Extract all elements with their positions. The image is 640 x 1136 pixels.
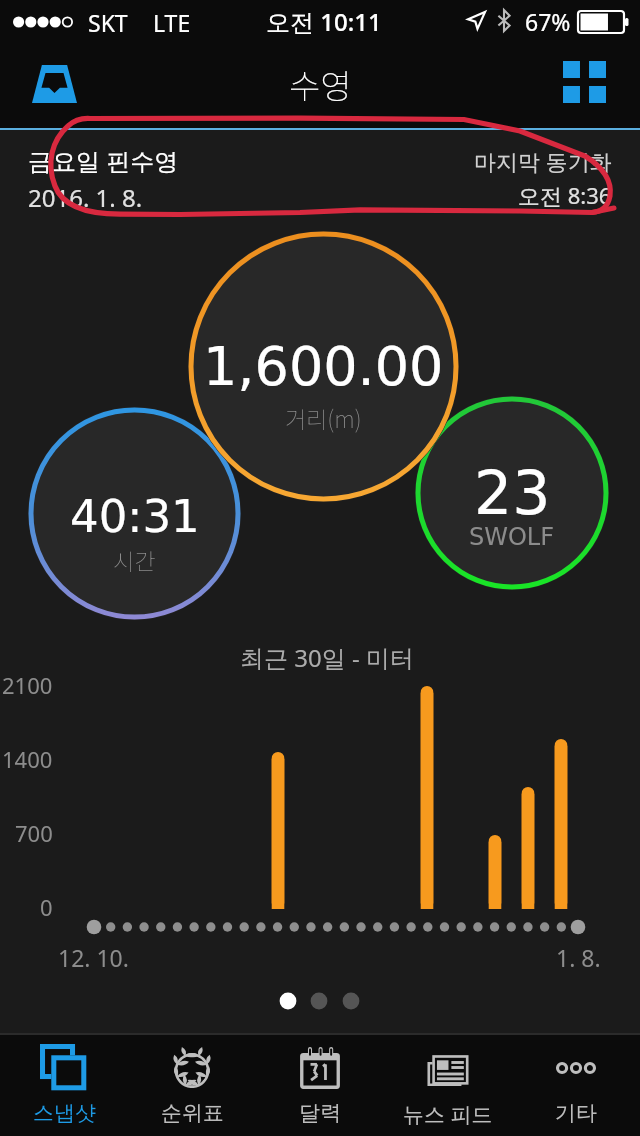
button[interactable]: Duration 40:31 (28, 407, 241, 620)
staticText: 40:31 (70, 490, 200, 542)
staticText: SWOLF (469, 523, 555, 551)
button[interactable]: 뉴스 피드 (384, 1035, 512, 1136)
button[interactable]: 기타 (512, 1035, 640, 1136)
staticText: 오전 10:11 (266, 5, 382, 38)
staticText: 순위표 (161, 1100, 224, 1126)
staticText: 67% (525, 6, 571, 37)
staticText: 시간 (113, 543, 156, 576)
button[interactable]: Distance 1,600.00 meters (188, 231, 459, 502)
staticText: 23 (474, 458, 551, 528)
staticText: 뉴스 피드 (403, 1100, 493, 1129)
staticText: 1. 8. (556, 942, 601, 973)
staticText: 0 (40, 892, 53, 922)
staticText: 700 (15, 818, 53, 848)
staticText: 수영 (289, 60, 352, 109)
button[interactable]: SWOLF 23 (415, 396, 609, 590)
staticText: SKT (88, 7, 128, 38)
button[interactable]: 순위표 (128, 1035, 256, 1136)
button[interactable]: 금요일 핀수영 (0, 130, 640, 220)
staticText: 금요일 핀수영 (28, 144, 179, 177)
button[interactable]: Grid view (549, 47, 619, 117)
staticText: 1,600.00 (203, 335, 444, 398)
staticText: 2100 (2, 670, 53, 700)
staticText: 기타 (555, 1100, 597, 1126)
staticText: 1400 (2, 744, 53, 774)
staticText: 오전 8:36 (518, 180, 612, 210)
staticText: 12. 10. (58, 942, 129, 973)
staticText: 최근 30일 - 미터 (240, 641, 414, 674)
button[interactable]: Inbox (19, 49, 89, 119)
staticText: 2016. 1. 8. (28, 181, 143, 214)
staticText: LTE (153, 7, 191, 38)
staticText: 달력 (299, 1100, 341, 1126)
button[interactable]: 달력 (256, 1035, 384, 1136)
staticText: 스냅샷 (33, 1100, 96, 1126)
button[interactable]: 스냅샷 (0, 1035, 128, 1136)
staticText: 거리(m) (285, 401, 362, 434)
staticText: 마지막 동기화 (474, 146, 612, 176)
